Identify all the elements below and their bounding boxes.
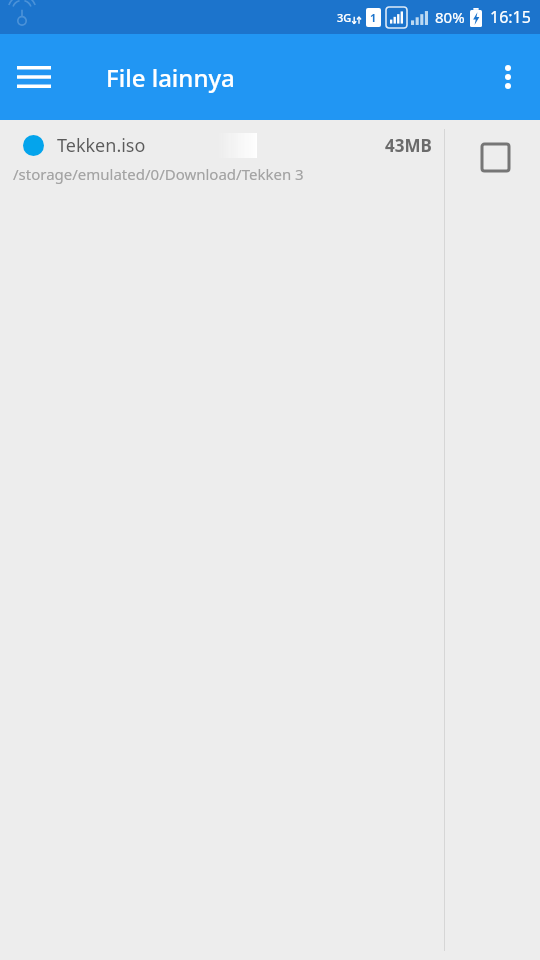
button[interactable]: Tekken.iso (0, 120, 540, 960)
staticText: 16:15 (490, 6, 531, 28)
staticText: 80% (435, 7, 465, 27)
staticText: File lainnya (106, 61, 235, 94)
staticText: 1 (370, 10, 377, 25)
button[interactable]: Open navigation drawer (6, 49, 62, 105)
button[interactable]: More options (482, 51, 534, 103)
staticText: 43MB (385, 134, 432, 157)
staticText: Tekken.iso (57, 133, 146, 158)
staticText: 3G (337, 10, 352, 25)
staticText: /storage/emulated/0/Download/Tekken 3 (13, 164, 304, 184)
button[interactable]: Select Tekken.iso (474, 136, 516, 178)
